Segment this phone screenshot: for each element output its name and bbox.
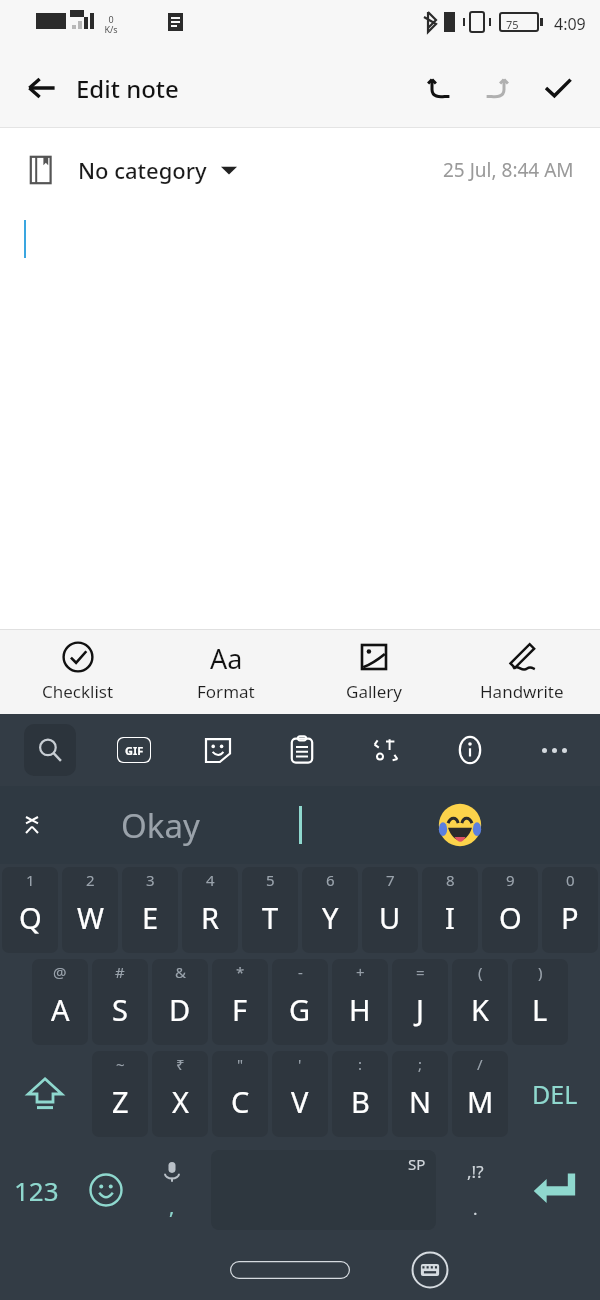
staticText: 4 — [206, 870, 215, 890]
staticText: GIF — [125, 743, 144, 758]
staticText: P — [561, 898, 579, 937]
staticText: 0 — [566, 870, 575, 890]
button[interactable]: 123 — [0, 1140, 73, 1240]
button[interactable]: DEL — [510, 1048, 600, 1140]
staticText: N — [409, 1082, 432, 1121]
staticText: 2 — [86, 870, 95, 890]
button[interactable]: * — [212, 959, 268, 1045]
staticText: ' — [298, 1054, 302, 1074]
button[interactable]: No category — [74, 149, 241, 191]
staticText: / — [477, 1054, 483, 1074]
button[interactable]: / — [452, 1051, 508, 1137]
button[interactable]: Search — [24, 724, 76, 776]
button[interactable]: 3 — [122, 867, 178, 953]
button[interactable]: Checklist — [8, 629, 148, 714]
button[interactable]: ' — [272, 1051, 328, 1137]
staticText: - — [298, 962, 303, 982]
button[interactable]: 4 — [182, 867, 238, 953]
staticText: I — [445, 898, 455, 937]
staticText: C — [231, 1082, 250, 1121]
staticText: Edit note — [76, 72, 179, 105]
button[interactable]: Home — [230, 1261, 350, 1279]
staticText: ( — [478, 962, 483, 982]
button[interactable]: " — [212, 1051, 268, 1137]
staticText: Aa — [210, 640, 243, 674]
staticText: K — [471, 990, 489, 1029]
staticText: U — [379, 898, 401, 937]
button[interactable]: 6 — [302, 867, 358, 953]
staticText: " — [237, 1054, 244, 1074]
button[interactable]: Undo — [408, 58, 468, 118]
staticText: : — [358, 1054, 363, 1074]
staticText: + — [356, 962, 365, 982]
button[interactable]: = — [392, 959, 448, 1045]
button[interactable]: 0 — [542, 867, 598, 953]
button[interactable]: 9 — [482, 867, 538, 953]
button[interactable]: Handwrite — [452, 629, 592, 714]
button[interactable]: ~ — [92, 1051, 148, 1137]
button[interactable]: 2 — [62, 867, 118, 953]
button[interactable]: Translate — [360, 724, 412, 776]
button[interactable]: 5 — [242, 867, 298, 953]
staticText: Handwrite — [480, 680, 564, 703]
button[interactable]: + — [332, 959, 388, 1045]
staticText: 6 — [326, 870, 335, 890]
button[interactable]: 1 — [2, 867, 58, 953]
button[interactable]: Clipboard — [276, 724, 328, 776]
button[interactable]: ,!? — [442, 1140, 508, 1240]
staticText: Format — [197, 680, 255, 703]
button[interactable]: Info — [444, 724, 496, 776]
staticText: ) — [538, 962, 543, 982]
button[interactable]: Aa — [156, 629, 296, 714]
button[interactable]: & — [152, 959, 208, 1045]
button[interactable]: Hide keyboard — [410, 1250, 450, 1290]
staticText: ,!? — [467, 1160, 484, 1183]
button[interactable]: Shift — [0, 1048, 90, 1140]
staticText: Gallery — [346, 680, 402, 703]
staticText: 7 — [386, 870, 395, 890]
button[interactable]: Expand suggestions — [8, 801, 56, 849]
staticText: W — [77, 898, 104, 937]
button[interactable]: ₹ — [152, 1051, 208, 1137]
staticText: Z — [112, 1082, 129, 1121]
button[interactable]: ( — [452, 959, 508, 1045]
button[interactable]: : — [332, 1051, 388, 1137]
staticText: DEL — [532, 1077, 578, 1111]
button[interactable]: Redo — [468, 58, 528, 118]
button[interactable]: - — [272, 959, 328, 1045]
button[interactable]: Voice input — [139, 1140, 205, 1240]
button[interactable]: More options — [528, 724, 580, 776]
button[interactable]: Emoji — [73, 1140, 139, 1240]
staticText: S — [112, 990, 128, 1029]
button[interactable]: 7 — [362, 867, 418, 953]
staticText: T — [262, 898, 279, 937]
staticText: 123 — [14, 1173, 59, 1208]
button[interactable] — [420, 786, 500, 864]
staticText: Checklist — [42, 680, 114, 703]
button[interactable]: Enter — [508, 1140, 600, 1240]
staticText: E — [142, 898, 159, 937]
staticText: Q — [19, 898, 42, 937]
staticText: . — [473, 1197, 478, 1220]
button[interactable]: Stickers — [192, 724, 244, 776]
button[interactable]: Save — [528, 58, 588, 118]
staticText: H — [349, 990, 371, 1029]
staticText: 5 — [266, 870, 275, 890]
staticText: J — [416, 990, 424, 1029]
button[interactable]: Space — [211, 1150, 436, 1230]
button[interactable]: ; — [392, 1051, 448, 1137]
button[interactable]: GIF — [108, 724, 160, 776]
staticText: 1 — [26, 870, 35, 890]
staticText: G — [289, 990, 311, 1029]
button[interactable]: Gallery — [304, 629, 444, 714]
button[interactable]: @ — [32, 959, 88, 1045]
staticText: 4:09 — [554, 13, 586, 35]
button[interactable]: Back — [14, 60, 70, 116]
staticText: ; — [418, 1054, 423, 1074]
staticText: Okay — [121, 803, 200, 848]
button[interactable]: 8 — [422, 867, 478, 953]
button[interactable]: Okay — [70, 786, 250, 864]
button[interactable]: ) — [512, 959, 568, 1045]
staticText: = — [416, 962, 425, 982]
button[interactable]: # — [92, 959, 148, 1045]
